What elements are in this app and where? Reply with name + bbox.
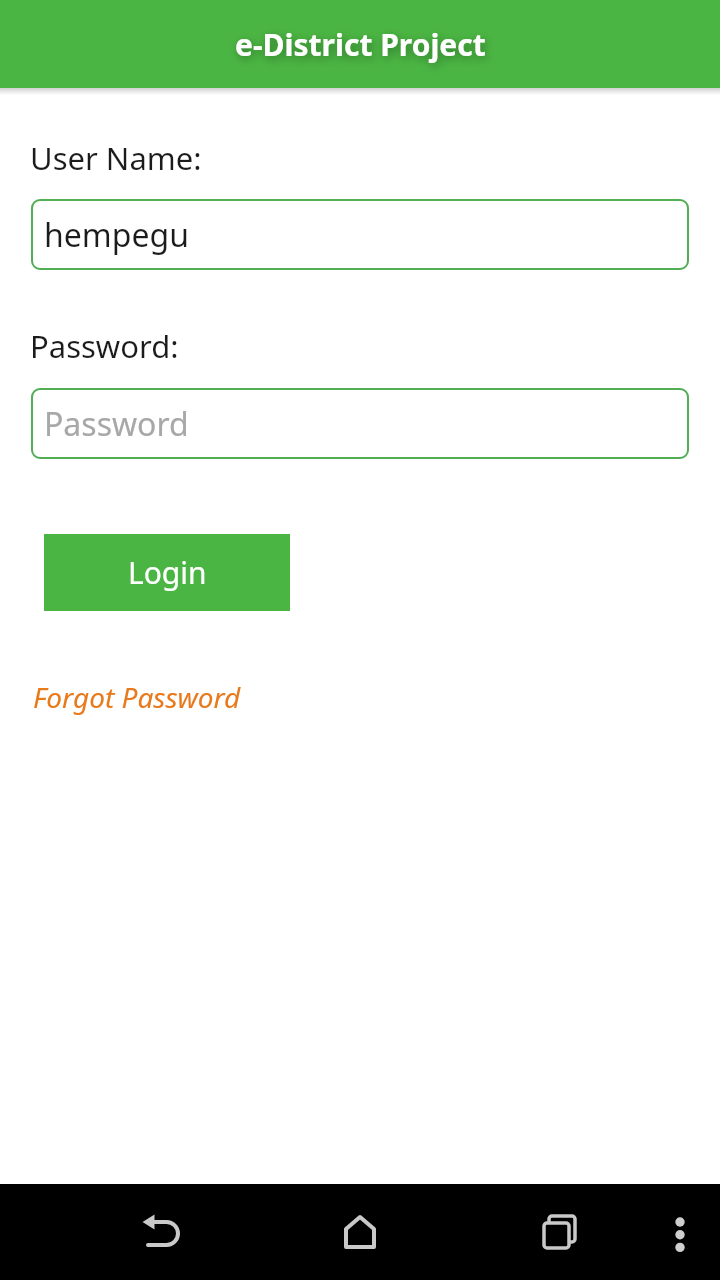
staticText: User Name: (30, 137, 202, 179)
staticText: e-District Project (235, 24, 486, 65)
staticText: hempegu (44, 213, 189, 257)
button[interactable] (520, 1192, 600, 1272)
button[interactable] (650, 1192, 710, 1272)
button[interactable]: Login (44, 534, 290, 611)
staticText: Password: (30, 325, 179, 367)
staticText: Password (44, 402, 189, 446)
button[interactable]: Forgot Password (33, 678, 241, 716)
button[interactable]: Password (31, 388, 689, 459)
staticText: Login (128, 552, 207, 593)
button[interactable]: hempegu (31, 199, 689, 270)
button[interactable] (120, 1192, 200, 1272)
button[interactable] (320, 1192, 400, 1272)
